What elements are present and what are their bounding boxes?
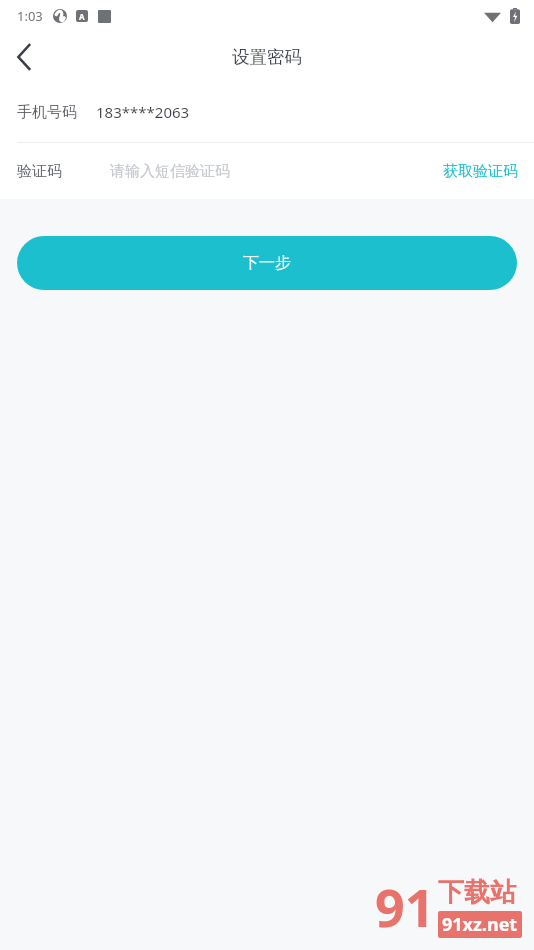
staticText: 1:03 — [17, 7, 43, 25]
staticText: 手机号码 — [17, 103, 77, 122]
button[interactable]: Back — [0, 33, 48, 81]
staticText: 下一步 — [243, 253, 291, 273]
staticText: 91 — [375, 871, 435, 942]
staticText: 91xz.net — [442, 912, 518, 937]
staticText: 183****2063 — [96, 102, 190, 122]
button[interactable]: 获取验证码 — [427, 152, 534, 191]
button[interactable]: 下一步 — [17, 236, 517, 290]
staticText: 设置密码 — [232, 46, 302, 68]
staticText: 获取验证码 — [443, 162, 518, 181]
staticText: 验证码 — [17, 162, 62, 181]
staticText: A — [79, 11, 85, 22]
staticText: 请输入短信验证码 — [110, 162, 230, 181]
staticText: 下载站 — [438, 876, 516, 909]
